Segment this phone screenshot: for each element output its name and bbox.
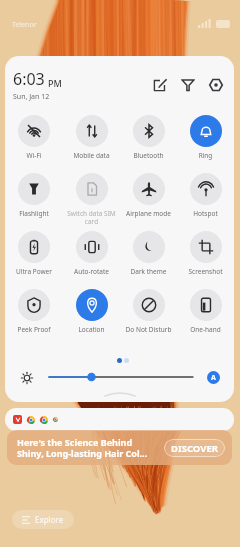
staticText: Sun, Jan 12 [13, 92, 50, 102]
staticText: Flashlight [8, 209, 60, 218]
staticText: Mobile data [66, 151, 117, 160]
staticText: Airplane mode [123, 209, 174, 218]
button[interactable]: Auto-rotate [63, 229, 120, 276]
button[interactable]: Switch data SIM card [63, 171, 120, 226]
button[interactable]: Ring [177, 113, 234, 160]
staticText: Ultra Power [8, 267, 60, 276]
staticText: One-hand [180, 325, 231, 334]
staticText: Wi-Fi [8, 151, 60, 160]
staticText: DISCOVER [171, 442, 218, 455]
button[interactable]: One-hand [177, 287, 234, 334]
button[interactable]: Settings [207, 76, 225, 94]
staticText: PM [48, 77, 62, 89]
staticText: A [211, 373, 216, 383]
button[interactable]: Filter [179, 76, 197, 94]
staticText: Dark theme [123, 267, 174, 276]
button[interactable]: DISCOVER [164, 439, 225, 457]
staticText: Ring [180, 151, 231, 160]
button[interactable]: Peek Proof [5, 287, 63, 334]
staticText: Auto-rotate [66, 267, 117, 276]
button[interactable]: Wi-Fi [5, 113, 63, 160]
button[interactable]: Mobile data [63, 113, 120, 160]
staticText: Switch data SIM card [66, 209, 117, 226]
button[interactable]: Location [63, 287, 120, 334]
button[interactable]: Do Not Disturb [120, 287, 177, 334]
staticText: Here's the Science Behind Shiny, Long-la… [17, 436, 162, 459]
button[interactable]: Bluetooth [120, 113, 177, 160]
staticText: Do Not Disturb [123, 325, 174, 334]
staticText: Peek Proof [8, 325, 60, 334]
button[interactable]: Here's the Science Behind Shiny, Long-la… [7, 430, 232, 465]
staticText: 6:03 [13, 68, 45, 90]
button[interactable]: Edit [151, 76, 169, 94]
button[interactable]: Explore [22, 514, 64, 525]
staticText: Location [66, 325, 117, 334]
button[interactable]: Airplane mode [120, 171, 177, 218]
button[interactable]: Screenshot [177, 229, 234, 276]
staticText: Screenshot [180, 267, 231, 276]
staticText: Explore [35, 514, 64, 525]
staticText: Bluetooth [123, 151, 174, 160]
button[interactable]: Hotspot [177, 171, 234, 218]
button[interactable]: Ultra Power [5, 229, 63, 276]
button[interactable]: Brightness [20, 371, 33, 384]
button[interactable]: Auto brightness [207, 371, 220, 384]
button[interactable]: Flashlight [5, 171, 63, 218]
staticText: Hotspot [180, 209, 231, 218]
button[interactable]: Dark theme [120, 229, 177, 276]
staticText: Telenor [12, 20, 37, 30]
button[interactable] [5, 408, 234, 431]
